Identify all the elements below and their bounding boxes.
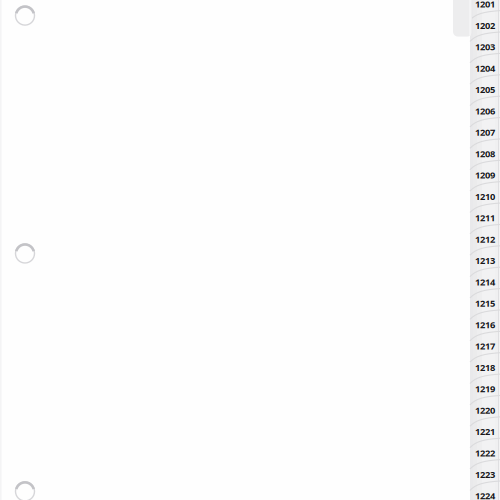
- button[interactable]: 1208: [473, 148, 497, 160]
- staticText: 1203: [475, 40, 495, 53]
- staticText: 1211: [475, 211, 495, 224]
- staticText: 1219: [475, 382, 495, 395]
- button[interactable]: 1221: [473, 425, 497, 437]
- staticText: 1202: [475, 19, 495, 31]
- button[interactable]: 1217: [473, 340, 497, 352]
- button[interactable]: 1210: [473, 190, 497, 202]
- button[interactable]: 1224: [473, 490, 497, 500]
- button[interactable]: 1219: [473, 383, 497, 395]
- button[interactable]: 1211: [473, 212, 497, 224]
- staticText: 1222: [475, 447, 495, 459]
- staticText: 1224: [475, 489, 495, 500]
- staticText: 1207: [475, 126, 495, 138]
- button[interactable]: 1204: [473, 62, 497, 74]
- button[interactable]: 1222: [473, 447, 497, 459]
- button[interactable]: 1213: [473, 254, 497, 266]
- staticText: 1212: [475, 233, 495, 245]
- staticText: 1215: [475, 297, 495, 309]
- button[interactable]: 1215: [473, 297, 497, 309]
- staticText: 1206: [475, 105, 495, 117]
- staticText: 1210: [475, 190, 495, 202]
- staticText: 1209: [475, 169, 495, 181]
- staticText: 1220: [475, 404, 495, 416]
- staticText: 1217: [475, 340, 495, 352]
- button[interactable]: 1218: [473, 361, 497, 373]
- staticText: 1218: [475, 361, 495, 374]
- button[interactable]: 1223: [473, 468, 497, 480]
- staticText: 1204: [475, 62, 495, 74]
- staticText: 1213: [475, 254, 495, 267]
- staticText: 1223: [475, 468, 495, 480]
- button[interactable]: 1203: [473, 41, 497, 53]
- button[interactable]: 1205: [473, 83, 497, 95]
- button[interactable]: 1201: [473, 0, 497, 10]
- button[interactable]: 1216: [473, 319, 497, 331]
- staticText: 1216: [475, 318, 495, 331]
- button[interactable]: 1206: [473, 105, 497, 117]
- staticText: 1208: [475, 147, 495, 160]
- staticText: 1221: [475, 425, 495, 438]
- button[interactable]: 1202: [473, 19, 497, 31]
- button[interactable]: 1220: [473, 404, 497, 416]
- staticText: 1201: [475, 0, 495, 10]
- button[interactable]: 1214: [473, 276, 497, 288]
- button[interactable]: 1207: [473, 126, 497, 138]
- button[interactable]: 1209: [473, 169, 497, 181]
- button[interactable]: 1212: [473, 233, 497, 245]
- staticText: 1205: [475, 83, 495, 96]
- staticText: 1214: [475, 276, 495, 288]
